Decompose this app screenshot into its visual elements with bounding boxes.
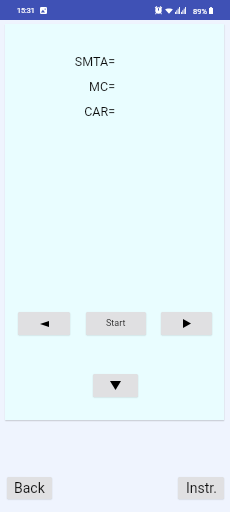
staticText: MC= [5,79,115,94]
staticText: Instr. [186,480,217,496]
button[interactable]: Down [93,374,138,397]
button[interactable]: Next [161,312,212,335]
staticText: CAR= [5,104,115,119]
staticText: Start [106,318,126,329]
button[interactable]: Back [7,477,52,499]
button[interactable]: Instr. [178,477,224,499]
button[interactable]: Previous [18,312,70,335]
staticText: 89% [193,7,207,16]
staticText: 15:31 [17,6,35,14]
staticText: SMTA= [5,54,115,69]
staticText: Back [14,480,45,496]
button[interactable]: Start [86,312,146,335]
